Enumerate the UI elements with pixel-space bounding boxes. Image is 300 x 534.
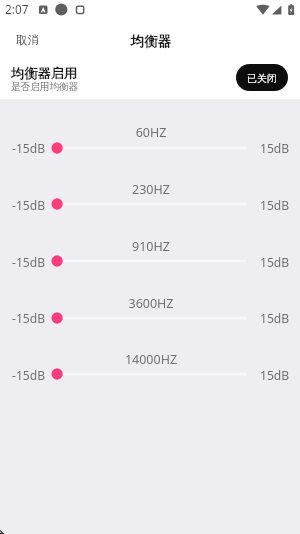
staticText: 14000HZ — [1, 351, 300, 368]
staticText: 均衡器 — [1, 33, 300, 50]
staticText: 60HZ — [1, 124, 300, 141]
staticText: 3600HZ — [1, 295, 300, 312]
staticText: -15dB — [12, 140, 46, 156]
button[interactable]: 60HZ level slider — [47, 139, 259, 157]
button[interactable]: 14000HZ level slider — [47, 365, 259, 383]
button[interactable]: 910HZ level slider — [47, 252, 259, 270]
staticText: -15dB — [12, 254, 46, 270]
button[interactable]: 取消 — [6, 28, 49, 52]
staticText: 是否启用均衡器 — [11, 81, 79, 93]
staticText: -15dB — [12, 310, 46, 326]
staticText: 230HZ — [1, 181, 300, 198]
button[interactable]: 已关闭 — [236, 64, 288, 91]
staticText: 15dB — [260, 367, 290, 383]
staticText: 15dB — [260, 254, 290, 270]
staticText: -15dB — [12, 197, 46, 213]
staticText: 取消 — [16, 33, 39, 47]
button[interactable]: 230HZ level slider — [47, 195, 259, 213]
staticText: 15dB — [260, 140, 290, 156]
staticText: 910HZ — [1, 238, 300, 255]
staticText: 均衡器启用 — [11, 65, 77, 82]
staticText: 15dB — [260, 310, 290, 326]
staticText: 已关闭 — [247, 72, 277, 84]
staticText: 15dB — [260, 197, 290, 213]
staticText: -15dB — [12, 367, 46, 383]
button[interactable]: 3600HZ level slider — [47, 309, 259, 327]
staticText: 2:07 — [5, 1, 29, 17]
